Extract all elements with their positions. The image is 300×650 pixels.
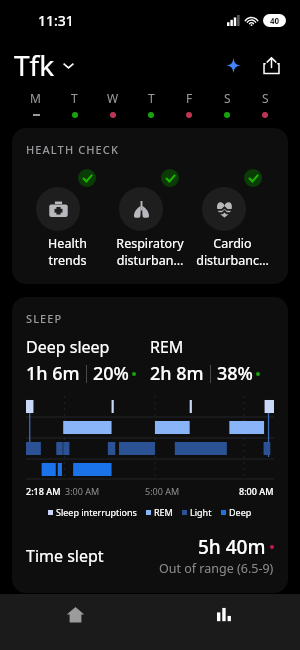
staticText: Deep <box>229 506 252 518</box>
staticText: 5:00 AM <box>145 485 180 497</box>
staticText: SLEEP <box>26 311 63 326</box>
staticText: HEALTH CHECK <box>26 142 119 157</box>
staticText: REM <box>150 336 184 358</box>
staticText: T <box>71 90 78 106</box>
staticText: Out of range (6.5-9) <box>159 560 274 577</box>
button[interactable]: Sleep interruptions <box>48 506 137 518</box>
staticText: 2:18 AM <box>26 485 61 497</box>
button[interactable]: S <box>208 90 246 118</box>
staticText: M <box>30 90 41 106</box>
staticText: Health trends <box>48 235 87 268</box>
button[interactable]: Health trends <box>26 169 108 268</box>
button[interactable]: T <box>55 90 94 118</box>
button[interactable]: Deep <box>221 506 252 518</box>
button[interactable]: Assistant <box>218 50 248 80</box>
button[interactable]: F <box>170 90 208 118</box>
button[interactable]: REM <box>146 506 173 518</box>
button[interactable]: Stats <box>150 594 300 650</box>
button[interactable]: Tfk <box>14 42 75 88</box>
staticText: Time slept <box>26 545 104 567</box>
button[interactable]: Time slept <box>26 534 274 577</box>
staticText: 8:00 AM <box>239 485 274 497</box>
staticText: 20% <box>93 361 129 386</box>
button[interactable]: Share <box>256 50 286 80</box>
button[interactable]: Cardio disturbanc… <box>191 169 274 268</box>
staticText: 40 <box>270 15 280 26</box>
staticText: Sleep interruptions <box>56 506 137 518</box>
staticText: 11:31 <box>38 11 74 30</box>
button[interactable]: M <box>16 90 55 118</box>
staticText: REM <box>154 506 173 518</box>
staticText: 2h 8m <box>150 361 204 386</box>
staticText: S <box>224 90 231 106</box>
button[interactable]: Respiratory disturban… <box>108 169 191 268</box>
staticText: 5h 40m <box>198 534 266 560</box>
button[interactable]: Home <box>0 594 150 650</box>
staticText: Light <box>190 506 212 518</box>
button[interactable]: Light <box>182 506 212 518</box>
staticText: 38% <box>217 361 253 386</box>
staticText: F <box>186 90 193 106</box>
staticText: Cardio disturbanc… <box>196 235 269 268</box>
staticText: S <box>262 90 269 106</box>
staticText: T <box>148 90 155 106</box>
staticText: 3:00 AM <box>65 485 100 497</box>
button[interactable]: T <box>132 90 170 118</box>
staticText: W <box>107 90 119 106</box>
button[interactable]: S <box>246 90 284 118</box>
staticText: Deep sleep <box>26 336 110 358</box>
staticText: Respiratory disturban… <box>116 235 184 268</box>
button[interactable]: W <box>94 90 132 118</box>
staticText: Tfk <box>14 46 55 84</box>
staticText: 1h 6m <box>26 361 80 386</box>
